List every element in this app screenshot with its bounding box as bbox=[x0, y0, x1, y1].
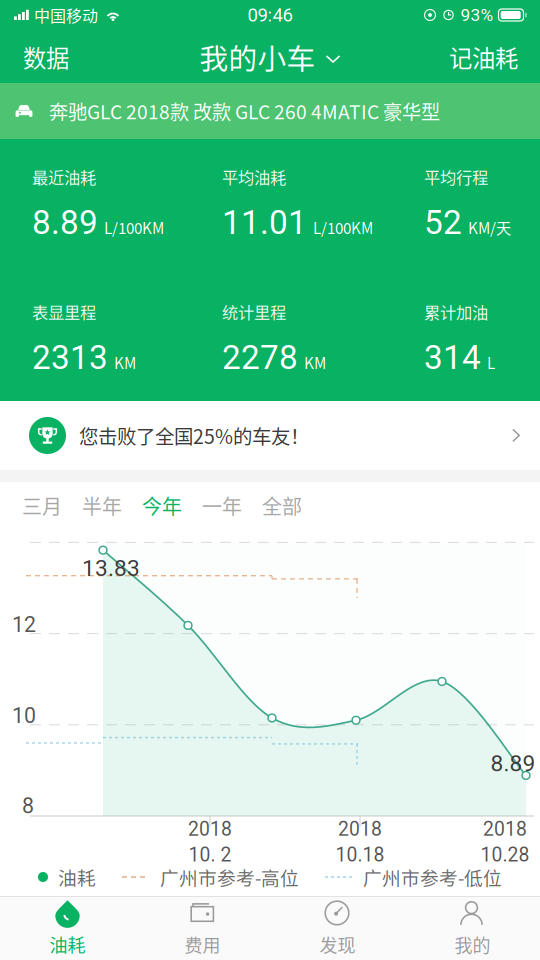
staticText: 平均油耗 bbox=[222, 165, 286, 189]
button[interactable]: 奔驰GLC 2018款 改款 GLC 260 4MATIC 豪华型 bbox=[0, 83, 540, 139]
staticText: 52 bbox=[424, 203, 462, 242]
staticText: 2018 bbox=[338, 818, 382, 840]
staticText: KM bbox=[114, 351, 136, 373]
staticText: 最近油耗 bbox=[32, 165, 96, 189]
staticText: 您击败了全国25%的车友！ bbox=[79, 421, 309, 450]
button[interactable]: 费用 bbox=[135, 897, 270, 960]
staticText: 奔驰GLC 2018款 改款 GLC 260 4MATIC 豪华型 bbox=[49, 97, 440, 125]
staticText: 油耗 bbox=[58, 863, 96, 890]
staticText: 费用 bbox=[184, 931, 220, 958]
staticText: 09:46 bbox=[247, 4, 292, 26]
button[interactable]: 我的 bbox=[405, 897, 540, 960]
staticText: KM/天 bbox=[468, 216, 511, 238]
staticText: 记油耗 bbox=[449, 40, 518, 74]
button[interactable]: 数据 bbox=[0, 34, 103, 80]
staticText: 广州市参考-高位 bbox=[160, 863, 299, 890]
staticText: 10 bbox=[12, 703, 36, 728]
staticText: 我的 bbox=[454, 931, 490, 958]
button[interactable]: 全部 bbox=[252, 482, 312, 529]
staticText: 全部 bbox=[262, 491, 302, 520]
staticText: 数据 bbox=[23, 40, 69, 74]
staticText: 发现 bbox=[319, 931, 355, 958]
staticText: 8.89 bbox=[32, 203, 98, 242]
button[interactable]: 今年 bbox=[132, 482, 192, 529]
staticText: 8 bbox=[22, 793, 34, 818]
staticText: 三月 bbox=[22, 491, 62, 520]
button[interactable]: 三月 bbox=[12, 482, 72, 529]
button[interactable]: 记油耗 bbox=[428, 34, 540, 80]
staticText: 2313 bbox=[32, 338, 108, 377]
staticText: 93% bbox=[460, 5, 493, 25]
staticText: L bbox=[487, 351, 495, 373]
button[interactable]: 发现 bbox=[270, 897, 405, 960]
button[interactable]: 我的小车 bbox=[199, 34, 340, 80]
staticText: 统计里程 bbox=[222, 300, 286, 324]
staticText: 314 bbox=[424, 338, 481, 377]
staticText: 11.01 bbox=[222, 203, 307, 242]
staticText: 12 bbox=[12, 612, 36, 637]
staticText: 2018 bbox=[483, 818, 527, 840]
staticText: 13.83 bbox=[82, 555, 140, 581]
button[interactable]: 半年 bbox=[72, 482, 132, 529]
staticText: 我的小车 bbox=[199, 36, 315, 78]
staticText: 平均行程 bbox=[424, 165, 488, 189]
staticText: 今年 bbox=[142, 491, 182, 520]
button[interactable]: 油耗 bbox=[0, 897, 135, 960]
staticText: 8.89 bbox=[490, 750, 535, 777]
staticText: 广州市参考-低位 bbox=[363, 863, 502, 890]
staticText: 一年 bbox=[202, 491, 242, 520]
staticText: 10. 2 bbox=[188, 843, 231, 866]
staticText: 10.18 bbox=[335, 843, 384, 866]
staticText: 表显里程 bbox=[32, 300, 96, 324]
staticText: 中国移动 bbox=[34, 3, 98, 27]
staticText: L/100KM bbox=[313, 216, 373, 238]
staticText: 2018 bbox=[188, 818, 232, 840]
button[interactable]: 一年 bbox=[192, 482, 252, 529]
staticText: 油耗 bbox=[49, 931, 85, 958]
staticText: 半年 bbox=[82, 491, 122, 520]
staticText: L/100KM bbox=[104, 216, 164, 238]
staticText: KM bbox=[304, 351, 326, 373]
button[interactable]: 您击败了全国25%的车友！ bbox=[0, 401, 540, 470]
staticText: 2278 bbox=[222, 338, 298, 377]
staticText: 10.28 bbox=[480, 843, 529, 866]
staticText: 累计加油 bbox=[424, 300, 488, 324]
